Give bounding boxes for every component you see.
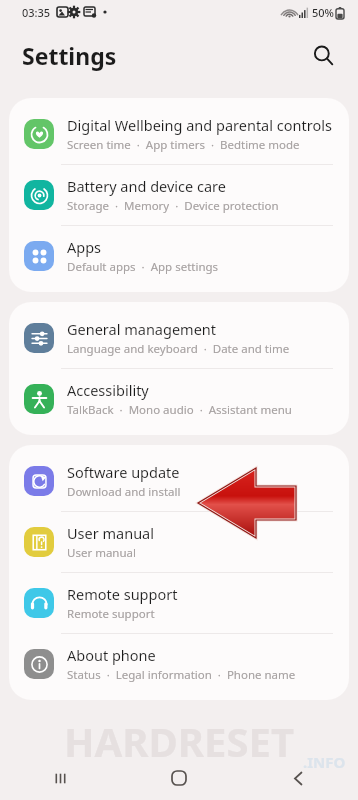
button[interactable]: Home	[155, 756, 203, 800]
staticText: Storage · Memory · Device protection	[67, 198, 279, 214]
staticText: 50%	[312, 5, 334, 20]
staticText: Apps	[67, 237, 102, 257]
button[interactable]: Digital Wellbeing and parental controls	[9, 104, 349, 164]
button[interactable]: General management	[9, 308, 349, 368]
button[interactable]: Software update	[9, 451, 349, 511]
staticText: General management	[67, 319, 217, 339]
button[interactable]: Apps	[9, 226, 349, 286]
button[interactable]: Accessibility	[9, 369, 349, 429]
button[interactable]: Remote support	[9, 573, 349, 633]
staticText: About phone	[67, 645, 156, 665]
staticText: Software update	[67, 462, 180, 482]
staticText: Remote support	[67, 584, 178, 604]
button[interactable]: Search settings	[302, 34, 344, 76]
button[interactable]: About phone	[9, 634, 349, 694]
staticText: Digital Wellbeing and parental controls	[67, 115, 332, 135]
button[interactable]: Back	[274, 756, 322, 800]
staticText: User manual	[67, 545, 136, 561]
button[interactable]: User manual	[9, 512, 349, 572]
staticText: .INFO	[303, 752, 346, 772]
staticText: Default apps · App settings	[67, 259, 219, 275]
staticText: Screen time · App timers · Bedtime mode	[67, 137, 300, 153]
staticText: User manual	[67, 523, 154, 543]
staticText: HARDRESET	[64, 714, 294, 768]
staticText: Download and install	[67, 484, 181, 500]
staticText: Status · Legal information · Phone name	[67, 667, 296, 683]
staticText: TalkBack · Mono audio · Assistant menu	[67, 402, 292, 418]
staticText: Settings	[22, 40, 117, 71]
staticText: 03:35	[22, 5, 51, 20]
staticText: Remote support	[67, 606, 155, 622]
staticText: Language and keyboard · Date and time	[67, 341, 290, 357]
button[interactable]: Recent apps	[36, 756, 84, 800]
button[interactable]: Battery and device care	[9, 165, 349, 225]
staticText: Battery and device care	[67, 176, 226, 196]
staticText: Accessibility	[67, 380, 149, 400]
